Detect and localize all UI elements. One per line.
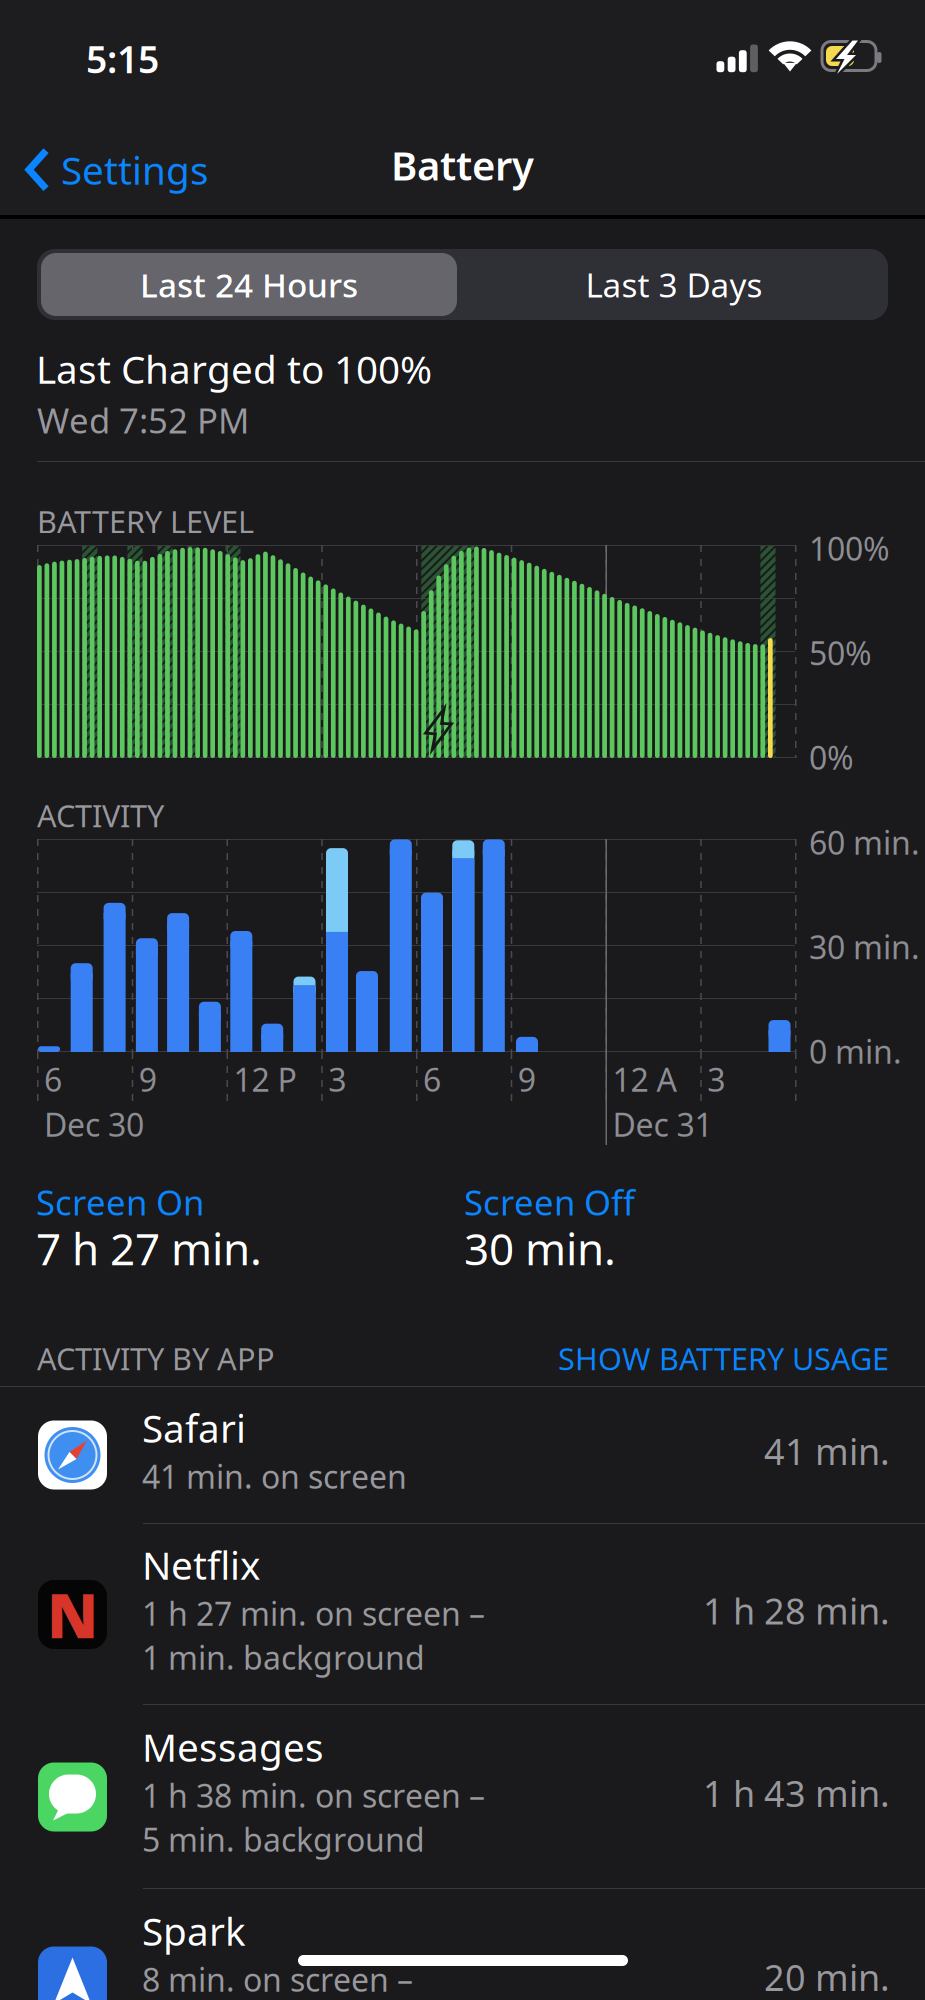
staticText: 12 P xyxy=(233,1058,296,1100)
button[interactable]: Spark xyxy=(0,1889,925,2000)
staticText: Battery xyxy=(391,138,534,191)
staticText: 3 xyxy=(328,1058,346,1100)
staticText: Dec 31 xyxy=(612,1103,712,1145)
staticText: Netflix xyxy=(142,1539,260,1590)
staticText: Messages xyxy=(142,1721,324,1772)
staticText: 9 xyxy=(139,1058,157,1100)
staticText: 41 min. on screen xyxy=(142,1455,407,1497)
staticText: Dec 30 xyxy=(44,1103,144,1145)
staticText: SHOW BATTERY USAGE xyxy=(558,1338,889,1379)
staticText: 30 min. xyxy=(809,925,920,968)
staticText: 9 xyxy=(518,1058,536,1100)
staticText: 1 h 28 min. xyxy=(703,1587,890,1634)
staticText: 41 min. xyxy=(764,1427,890,1475)
staticText: 30 min. xyxy=(464,1219,616,1277)
staticText: Last Charged to 100% xyxy=(36,343,432,394)
staticText: 1 h 43 min. xyxy=(703,1769,890,1817)
staticText: 1 h 27 min. on screen – xyxy=(142,1592,485,1634)
staticText: Spark xyxy=(142,1905,246,1956)
staticText: 20 min. xyxy=(764,1953,890,2000)
staticText: 100% xyxy=(809,527,890,569)
staticText: 6 xyxy=(423,1058,441,1100)
staticText: 5 min. background xyxy=(142,1818,425,1860)
staticText: Screen Off xyxy=(464,1179,635,1225)
staticText: 7 h 27 min. xyxy=(36,1219,262,1277)
staticText: Last 24 Hours xyxy=(140,262,358,307)
staticText: Settings xyxy=(61,144,209,195)
button[interactable]: SHOW BATTERY USAGE xyxy=(0,1338,889,1379)
button[interactable]: Safari xyxy=(0,1387,925,1523)
staticText: ACTIVITY BY APP xyxy=(37,1338,275,1379)
staticText: 1 h 38 min. on screen – xyxy=(142,1774,485,1816)
staticText: 60 min. xyxy=(809,821,920,863)
staticText: Last 3 Days xyxy=(585,262,762,307)
staticText: 8 min. on screen – xyxy=(142,1958,413,2000)
button[interactable]: Settings xyxy=(24,138,219,201)
staticText: 0% xyxy=(809,736,854,778)
staticText: 0 min. xyxy=(809,1030,902,1072)
staticText: 3 xyxy=(707,1058,725,1100)
staticText: Safari xyxy=(142,1402,246,1453)
staticText: ACTIVITY xyxy=(37,795,164,836)
staticText: 6 xyxy=(44,1058,62,1100)
staticText: Wed 7:52 PM xyxy=(37,397,249,443)
button[interactable]: Last 3 Days xyxy=(464,253,884,316)
staticText: BATTERY LEVEL xyxy=(37,501,254,542)
button[interactable]: Last 24 Hours xyxy=(41,253,457,316)
staticText: 1 min. background xyxy=(142,1636,425,1678)
button[interactable]: N xyxy=(0,1524,925,1705)
staticText: 5:15 xyxy=(86,34,159,84)
button[interactable]: Messages xyxy=(0,1705,925,1889)
staticText: 50% xyxy=(809,631,872,674)
staticText: N xyxy=(47,1574,98,1655)
staticText: 12 A xyxy=(612,1058,676,1100)
staticText: Screen On xyxy=(36,1179,204,1225)
